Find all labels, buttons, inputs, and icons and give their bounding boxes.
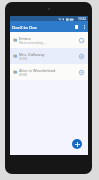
staticText: 00 KB xyxy=(19,57,28,61)
staticText: Emma xyxy=(19,36,31,41)
button[interactable]: Convert xyxy=(76,51,86,61)
button[interactable]: Convert xyxy=(76,35,86,45)
button[interactable]: Convert xyxy=(76,67,86,77)
button[interactable]: Alice in Wonderland xyxy=(10,64,88,80)
button[interactable]: Storage xyxy=(72,23,80,31)
staticText: File is converting ... xyxy=(19,41,46,45)
button[interactable]: More options xyxy=(80,23,88,31)
staticText: 13:32 xyxy=(78,17,87,21)
staticText: Mrs. Dalloway xyxy=(19,52,45,57)
staticText: Alice in Wonderland xyxy=(19,68,56,73)
button[interactable]: Add xyxy=(72,139,82,149)
staticText: 00 KB xyxy=(19,73,28,77)
button[interactable]: Mrs. Dalloway xyxy=(10,48,88,64)
button[interactable]: Emma xyxy=(10,32,88,48)
staticText: DocX to Doc xyxy=(12,24,37,30)
